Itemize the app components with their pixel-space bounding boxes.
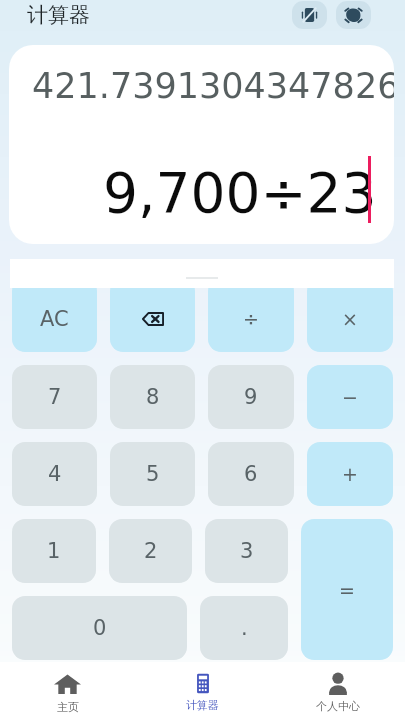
- staticText: −: [342, 386, 358, 408]
- staticText: +: [342, 463, 358, 485]
- button[interactable]: ÷: [208, 278, 294, 352]
- button[interactable]: .: [200, 596, 288, 660]
- staticText: 计算器: [27, 2, 90, 28]
- staticText: AC: [40, 307, 69, 331]
- button[interactable]: 3: [205, 519, 288, 583]
- button[interactable]: =: [301, 519, 393, 660]
- button[interactable]: Rotation lock: [292, 1, 327, 29]
- staticText: 主页: [57, 700, 79, 714]
- staticText: 9,700÷23: [103, 161, 377, 225]
- staticText: 5: [146, 462, 160, 486]
- button[interactable]: 0: [12, 596, 187, 660]
- button[interactable]: Vibration: [336, 1, 371, 29]
- staticText: 3: [240, 539, 254, 563]
- button[interactable]: ×: [307, 278, 393, 352]
- staticText: 2: [144, 539, 158, 563]
- button[interactable]: 5: [110, 442, 195, 506]
- button[interactable]: 4: [12, 442, 97, 506]
- staticText: =: [339, 579, 355, 601]
- staticText: 8: [146, 385, 160, 409]
- staticText: 个人中心: [316, 699, 360, 713]
- button[interactable]: 个人中心: [270, 662, 405, 720]
- button[interactable]: −: [307, 365, 393, 429]
- button[interactable]: AC: [12, 278, 97, 352]
- button[interactable]: +: [307, 442, 393, 506]
- staticText: .: [241, 616, 248, 640]
- staticText: ÷: [243, 308, 259, 330]
- button[interactable]: 计算器: [135, 662, 270, 720]
- button[interactable]: 主页: [0, 662, 135, 720]
- staticText: 4: [48, 462, 62, 486]
- button[interactable]: 9: [208, 365, 294, 429]
- staticText: 1: [47, 539, 61, 563]
- button[interactable]: 1: [12, 519, 96, 583]
- staticText: 计算器: [186, 698, 219, 712]
- staticText: 0: [93, 616, 107, 640]
- button[interactable]: [110, 278, 195, 352]
- staticText: 6: [244, 462, 258, 486]
- staticText: 7: [48, 385, 62, 409]
- button[interactable]: 2: [109, 519, 192, 583]
- button[interactable]: 6: [208, 442, 294, 506]
- staticText: 421.73913043478261: [32, 66, 394, 107]
- button[interactable]: 8: [110, 365, 195, 429]
- button[interactable]: 7: [12, 365, 97, 429]
- staticText: ×: [342, 308, 358, 330]
- staticText: 9: [244, 385, 258, 409]
